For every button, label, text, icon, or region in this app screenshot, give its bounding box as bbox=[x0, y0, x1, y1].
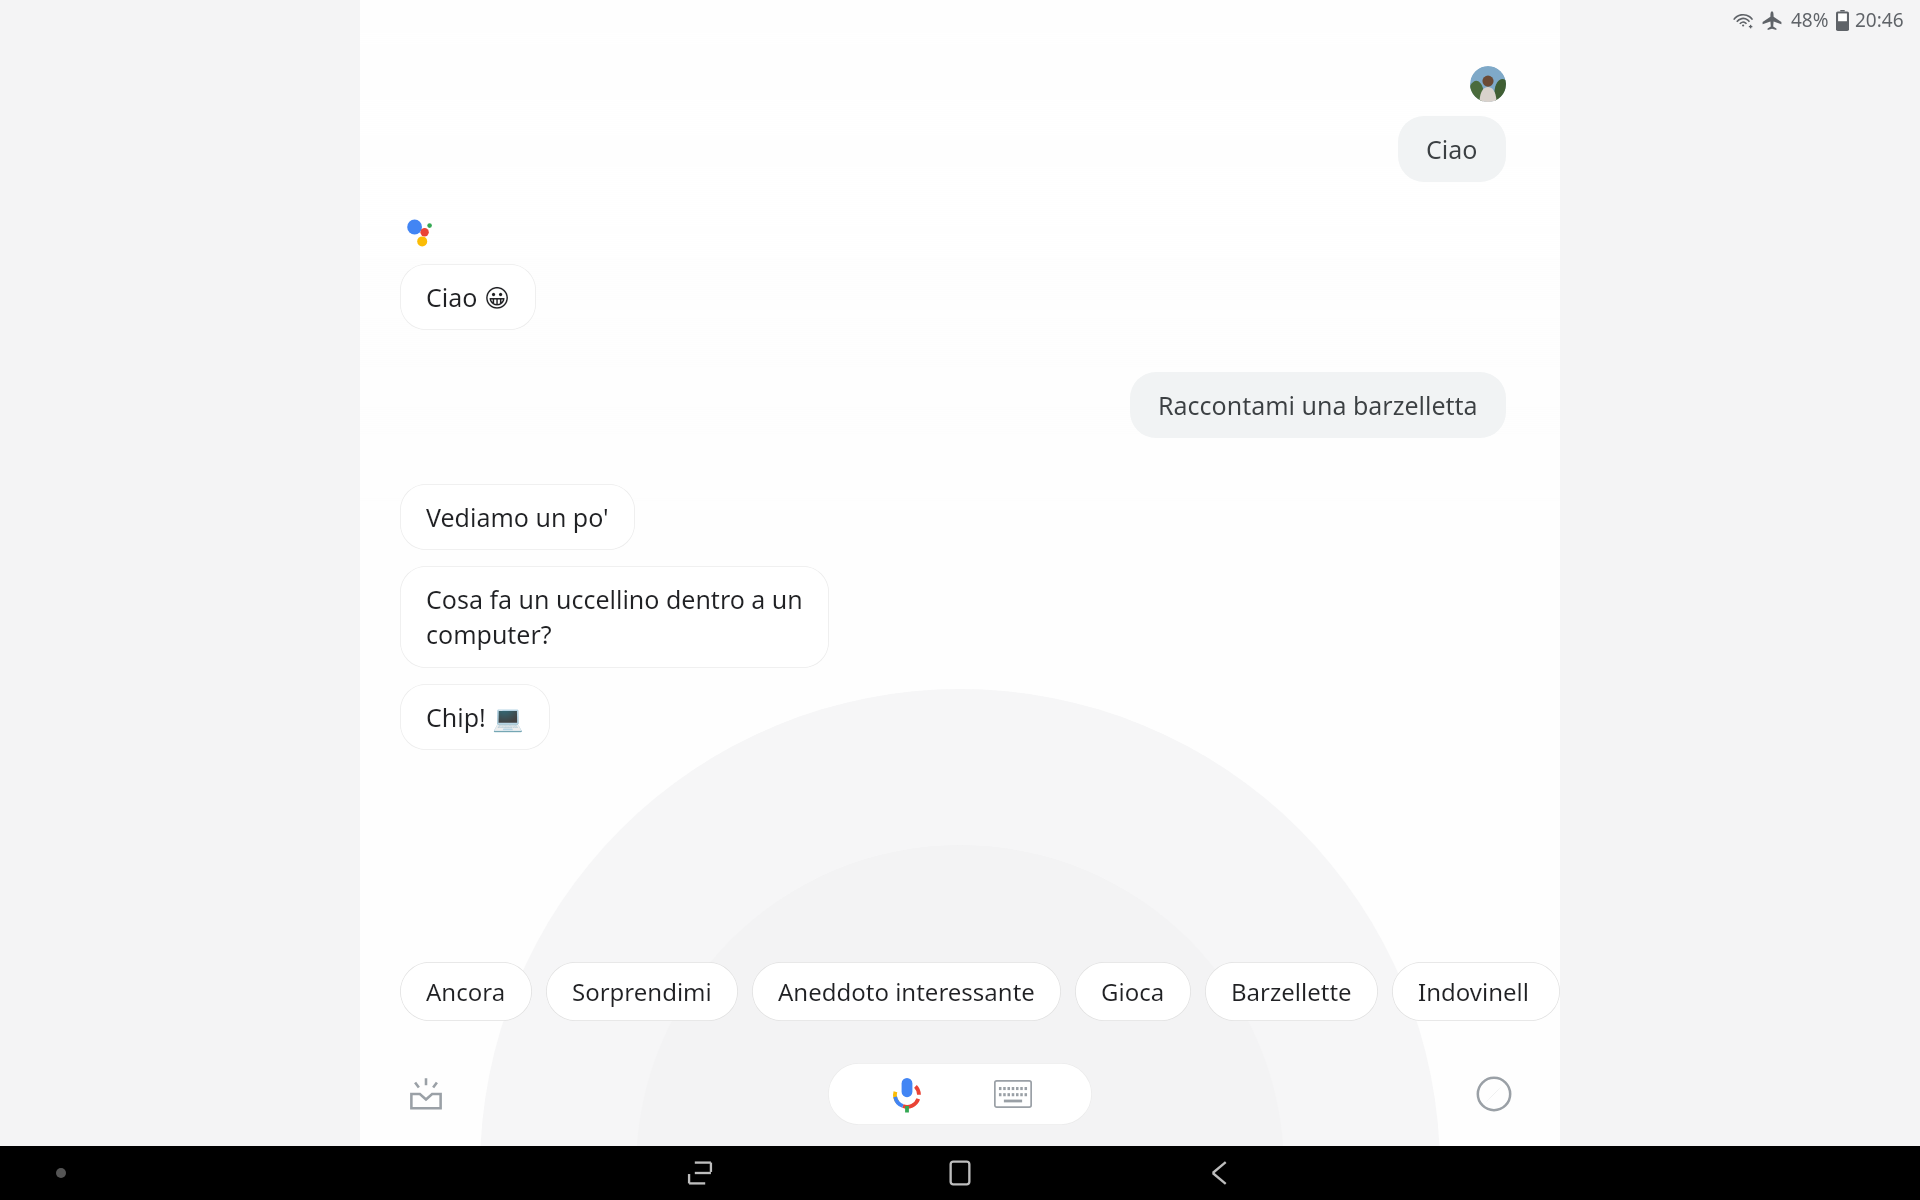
staticText: 20:46 bbox=[1855, 7, 1904, 33]
button[interactable]: Chip! 💻 bbox=[400, 684, 550, 750]
button[interactable]: Gioca bbox=[1075, 962, 1191, 1021]
button[interactable]: Account bbox=[1470, 66, 1506, 102]
button[interactable]: Voice input bbox=[880, 1067, 934, 1121]
button[interactable]: Recents bbox=[590, 1146, 810, 1200]
staticText: 48% bbox=[1791, 7, 1829, 33]
button[interactable]: Explore bbox=[1462, 1062, 1526, 1126]
button[interactable]: Aneddoto interessante bbox=[752, 962, 1061, 1021]
staticText: Gioca bbox=[1101, 975, 1165, 1008]
staticText: Indovinello bbox=[1418, 975, 1534, 1008]
staticText: Ciao 😀 bbox=[426, 280, 510, 314]
staticText: Cosa fa un uccellino dentro a un compute… bbox=[426, 582, 803, 652]
button[interactable]: Indovinello bbox=[1392, 962, 1560, 1021]
button[interactable]: Back bbox=[1110, 1146, 1330, 1200]
staticText: Vediamo un po' bbox=[426, 500, 609, 534]
button[interactable]: Ancora bbox=[400, 962, 532, 1021]
staticText: Ancora bbox=[426, 975, 506, 1008]
button[interactable]: Sorprendimi bbox=[546, 962, 738, 1021]
button[interactable]: Ciao bbox=[1398, 116, 1506, 182]
button[interactable]: Barzellette bbox=[1205, 962, 1378, 1021]
button[interactable]: Raccontami una barzelletta bbox=[1130, 372, 1506, 438]
staticText: Barzellette bbox=[1231, 975, 1352, 1008]
staticText: Aneddoto interessante bbox=[778, 975, 1035, 1008]
button[interactable]: Vediamo un po' bbox=[400, 484, 635, 550]
staticText: Raccontami una barzelletta bbox=[1158, 388, 1478, 422]
staticText: Chip! 💻 bbox=[426, 700, 524, 734]
button[interactable]: Keyboard bbox=[986, 1067, 1040, 1121]
button[interactable]: Cosa fa un uccellino dentro a un compute… bbox=[400, 566, 829, 668]
staticText: Ciao bbox=[1426, 132, 1478, 166]
button[interactable]: Ciao 😀 bbox=[400, 264, 536, 330]
button[interactable]: Home bbox=[850, 1146, 1070, 1200]
button[interactable]: Snapshot bbox=[394, 1062, 458, 1126]
staticText: Sorprendimi bbox=[572, 975, 712, 1008]
